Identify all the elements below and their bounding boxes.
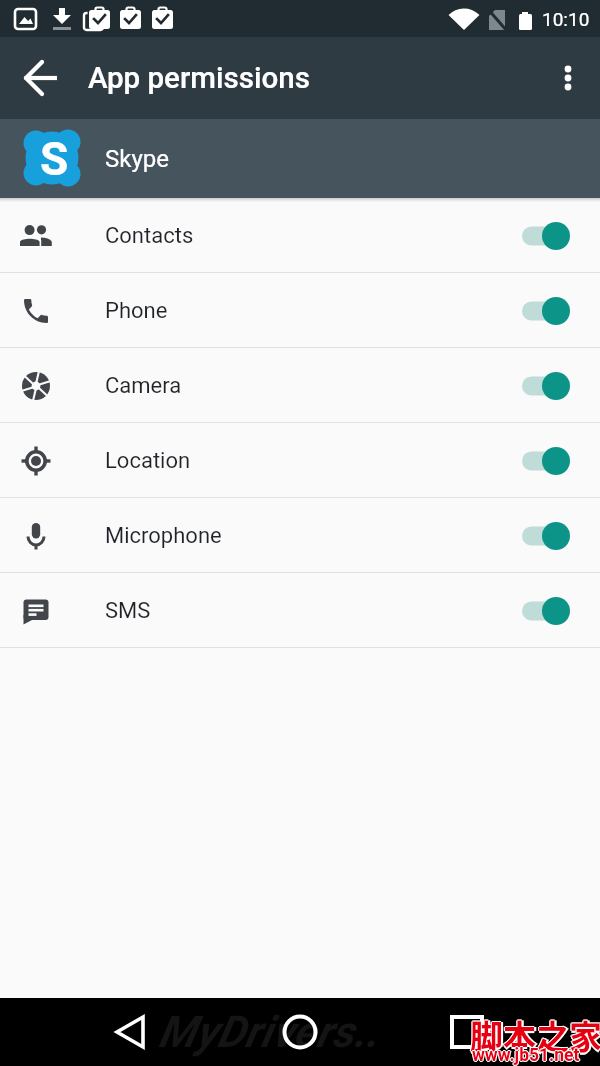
staticText: SMS — [105, 598, 151, 624]
staticText: Contacts — [105, 223, 194, 249]
button[interactable] — [275, 1007, 325, 1057]
staticText: 脚本之家 — [470, 1011, 600, 1059]
button[interactable] — [550, 60, 586, 96]
button[interactable] — [522, 220, 578, 252]
staticText: Skype — [105, 145, 169, 173]
staticText: 脚本之家 — [469, 1011, 600, 1059]
staticText: MyDrivers.. — [158, 1006, 379, 1058]
button[interactable] — [522, 295, 578, 327]
button[interactable] — [442, 1007, 492, 1057]
button[interactable] — [10, 48, 70, 108]
staticText: www.jb51.net — [473, 1045, 581, 1066]
button[interactable]: Contacts — [0, 198, 600, 273]
button[interactable]: S — [0, 119, 600, 198]
staticText: 脚本之家 — [470, 1010, 600, 1058]
staticText: 脚本之家 — [472, 1011, 600, 1059]
staticText: Microphone — [105, 523, 222, 549]
staticText: App permissions — [88, 61, 311, 96]
button[interactable]: Camera — [0, 348, 600, 423]
staticText: Phone — [105, 298, 168, 324]
staticText: www.jb51.net — [472, 1046, 580, 1066]
staticText: www.jb51.net — [472, 1045, 580, 1066]
staticText: Location — [105, 448, 191, 474]
button[interactable] — [105, 1007, 155, 1057]
button[interactable] — [522, 370, 578, 402]
button[interactable]: SMS — [0, 573, 600, 648]
staticText: 脚本之家 — [470, 1013, 600, 1061]
staticText: S — [40, 132, 69, 186]
staticText: www.jb51.net — [472, 1044, 580, 1065]
button[interactable]: Phone — [0, 273, 600, 348]
button[interactable] — [522, 520, 578, 552]
staticText: Camera — [105, 373, 182, 399]
button[interactable] — [522, 445, 578, 477]
button[interactable] — [522, 595, 578, 627]
staticText: 10:10 — [542, 8, 590, 30]
button[interactable]: Location — [0, 423, 600, 498]
staticText: www.jb51.net — [471, 1045, 579, 1066]
button[interactable]: Microphone — [0, 498, 600, 573]
